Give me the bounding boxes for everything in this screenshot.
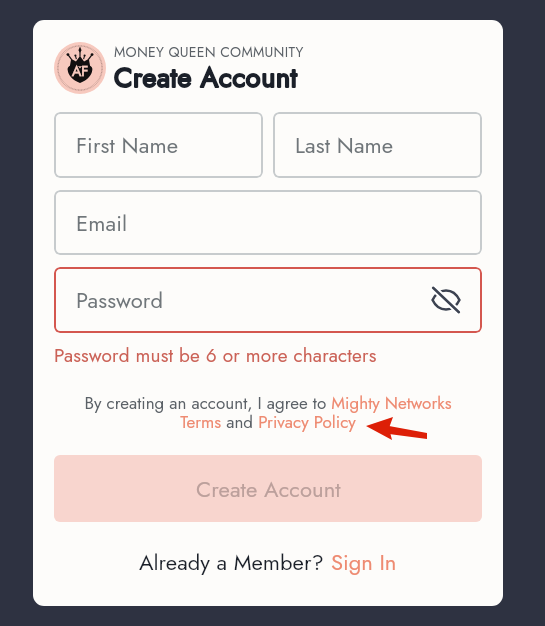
staticText: Password must be 6 or more characters bbox=[54, 342, 377, 369]
staticText: Last Name bbox=[295, 129, 394, 161]
button[interactable]: Show password bbox=[427, 281, 465, 319]
staticText: Already a Member? bbox=[139, 546, 331, 578]
button[interactable]: Sign In bbox=[331, 546, 397, 578]
button[interactable]: Password bbox=[54, 267, 482, 333]
staticText: AF bbox=[72, 61, 89, 81]
button[interactable]: First Name bbox=[54, 112, 263, 178]
staticText: Create Account bbox=[196, 473, 341, 505]
staticText: Create Account bbox=[114, 58, 298, 97]
staticText: MONEY QUEEN COMMUNITY bbox=[114, 42, 304, 62]
staticText: First Name bbox=[76, 129, 179, 161]
staticText: Create Account bbox=[114, 58, 298, 97]
button[interactable]: Create Account bbox=[54, 455, 482, 522]
button[interactable]: Last Name bbox=[273, 112, 482, 178]
staticText: Password bbox=[76, 284, 164, 316]
staticText: Email bbox=[76, 207, 128, 239]
button[interactable]: Email bbox=[54, 190, 482, 255]
staticText: By creating an account, I agree to Might… bbox=[64, 391, 472, 434]
